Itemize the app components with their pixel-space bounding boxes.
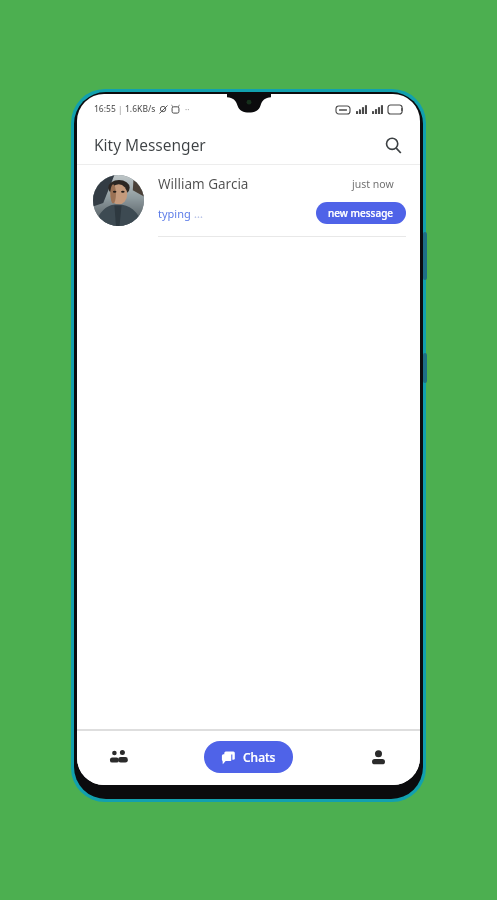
staticText: |	[118, 104, 123, 115]
staticText: new message	[328, 206, 394, 220]
button[interactable]: Chats	[204, 741, 293, 773]
staticText: 16:55	[94, 103, 116, 115]
staticText: typing	[158, 206, 191, 221]
staticText: ··	[185, 104, 190, 115]
button[interactable]: new message	[316, 202, 406, 224]
staticText: Kity Messenger	[94, 134, 206, 155]
staticText: just now	[352, 177, 394, 191]
button[interactable]: Profile	[354, 733, 402, 781]
button[interactable]: William Garcia	[77, 165, 420, 237]
staticText: 1.6KB/s	[125, 103, 156, 115]
staticText: Chats	[243, 749, 276, 765]
button[interactable]: Search	[376, 128, 410, 162]
button[interactable]: Groups	[95, 733, 143, 781]
staticText: ...	[194, 206, 203, 221]
staticText: William Garcia	[158, 175, 352, 193]
